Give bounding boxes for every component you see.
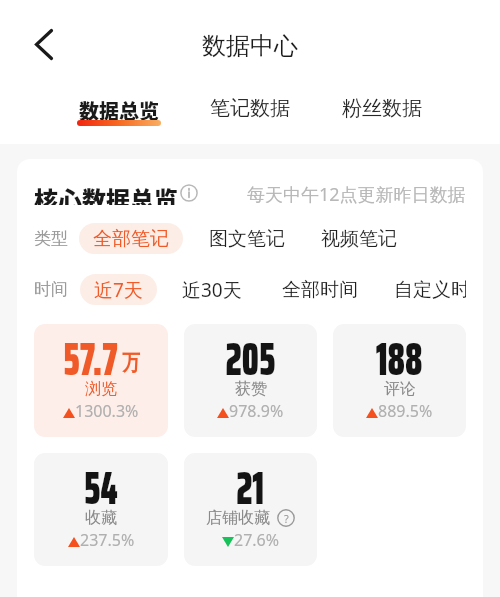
button[interactable]: 205 (184, 324, 317, 437)
staticText: 全部时间 (282, 278, 358, 302)
staticText: 数据中心 (202, 31, 298, 61)
button[interactable]: 粉丝数据 (340, 75, 424, 121)
staticText: 收藏 (85, 508, 117, 528)
button[interactable]: 笔记数据 (208, 75, 292, 121)
button[interactable]: 近30天 (182, 274, 242, 305)
staticText: 获赞 (235, 379, 267, 399)
button[interactable]: 57.7 (34, 324, 168, 437)
staticText: 自定义时间 (394, 278, 466, 302)
staticText: 图文笔记 (209, 227, 285, 251)
staticText: 全部笔记 (93, 227, 169, 251)
staticText: 时间 (34, 279, 68, 300)
button[interactable]: 自定义时间 (394, 274, 466, 305)
staticText: 粉丝数据 (342, 96, 422, 121)
staticText: 27.6% (234, 529, 280, 551)
staticText: 评论 (384, 379, 416, 399)
staticText: 每天中午12点更新昨日数据 (247, 182, 466, 206)
staticText: 视频笔记 (321, 227, 397, 251)
button[interactable]: 54 (34, 453, 168, 566)
staticText: 店铺收藏 (206, 508, 270, 528)
staticText: ? (284, 511, 289, 526)
staticText: 1300.3% (75, 400, 139, 422)
staticText: 近7天 (94, 277, 143, 303)
staticText: 核心数据总览 (34, 181, 178, 205)
staticText: 57.7 (63, 324, 118, 395)
staticText: 889.5% (378, 400, 433, 422)
button[interactable]: 图文笔记 (209, 223, 285, 254)
staticText: 近30天 (182, 277, 242, 303)
staticText: 205 (225, 324, 275, 395)
staticText: 数据总览 (79, 96, 159, 125)
button[interactable]: 全部时间 (282, 274, 358, 305)
staticText: 类型 (34, 228, 68, 249)
button[interactable]: Back (26, 26, 62, 62)
button[interactable]: 视频笔记 (321, 223, 397, 254)
staticText: 978.9% (229, 400, 284, 422)
staticText: 浏览 (85, 379, 117, 399)
button[interactable]: 全部笔记 (79, 223, 183, 254)
button[interactable]: 21 (184, 453, 317, 566)
staticText: 237.5% (80, 529, 135, 551)
staticText: 188 (376, 324, 423, 395)
button[interactable]: 数据总览 (77, 75, 161, 131)
staticText: 54 (84, 453, 118, 524)
staticText: 万 (122, 349, 140, 377)
button[interactable]: 近7天 (80, 274, 157, 305)
staticText: 21 (236, 453, 265, 524)
button[interactable]: 188 (333, 324, 466, 437)
staticText: 笔记数据 (210, 96, 290, 121)
